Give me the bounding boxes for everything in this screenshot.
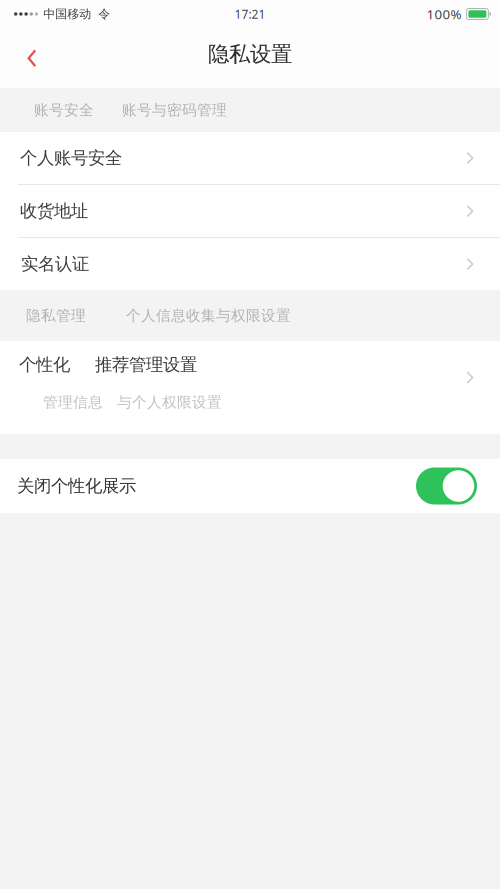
staticText: 隐私管理	[26, 306, 86, 324]
staticText: 个人信息收集与权限设置	[126, 306, 291, 324]
staticText: 实名认证	[21, 253, 89, 275]
staticText: 关闭个性化展示	[17, 475, 136, 497]
staticText: 与个人权限设置	[117, 393, 222, 411]
staticText: 17:21	[234, 6, 265, 22]
staticText: 收货地址	[20, 200, 88, 222]
staticText: 管理信息	[43, 393, 103, 411]
button[interactable]: 关闭个性化展示	[0, 459, 500, 513]
button[interactable]: 个性化	[0, 341, 500, 434]
staticText: 个人账号安全	[20, 147, 122, 169]
staticText: 令	[98, 7, 110, 21]
staticText: 中国移动	[43, 7, 91, 21]
button[interactable]: Back	[0, 28, 72, 88]
staticText: 推荐管理设置	[95, 354, 197, 375]
staticText: 账号安全	[34, 101, 94, 119]
button[interactable]: 收货地址	[0, 185, 500, 237]
staticText: 100%	[423, 5, 461, 23]
staticText: 隐私设置	[208, 41, 292, 67]
staticText: 个性化	[19, 354, 70, 375]
button[interactable]: 个人账号安全	[0, 132, 500, 184]
button[interactable]: 实名认证	[0, 238, 500, 290]
staticText: 账号与密码管理	[122, 101, 227, 119]
